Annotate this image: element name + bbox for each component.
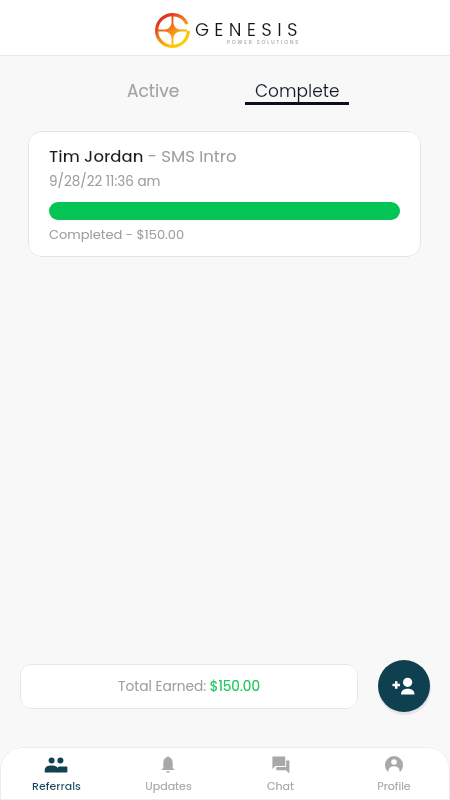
button[interactable]: Complete	[245, 56, 349, 106]
staticText: Chat	[267, 778, 294, 793]
staticText: Referrals	[32, 778, 81, 793]
staticText: Tim Jordan - SMS Intro	[49, 145, 237, 168]
staticText: Profile	[377, 778, 411, 793]
button[interactable]: Chat	[224, 747, 337, 800]
staticText: GENESIS	[195, 17, 303, 42]
staticText: 9/28/22 11:36 am	[49, 172, 161, 191]
staticText: Total Earned: $150.00	[118, 677, 261, 696]
staticText: Active	[127, 79, 180, 103]
button[interactable]: Profile	[337, 747, 450, 800]
staticText: Completed - $150.00	[49, 225, 185, 243]
button[interactable]: Total Earned: $150.00	[20, 664, 358, 709]
staticText: Complete	[255, 79, 340, 103]
button[interactable]: Updates	[112, 747, 224, 800]
button[interactable]: Referrals	[0, 747, 112, 800]
staticText: Updates	[145, 778, 192, 793]
button[interactable]: Add referral	[378, 660, 430, 712]
button[interactable]: Tim Jordan - SMS Intro	[28, 131, 421, 257]
staticText: POWER SOLUTIONS	[227, 39, 301, 46]
button[interactable]: Active	[101, 56, 205, 106]
